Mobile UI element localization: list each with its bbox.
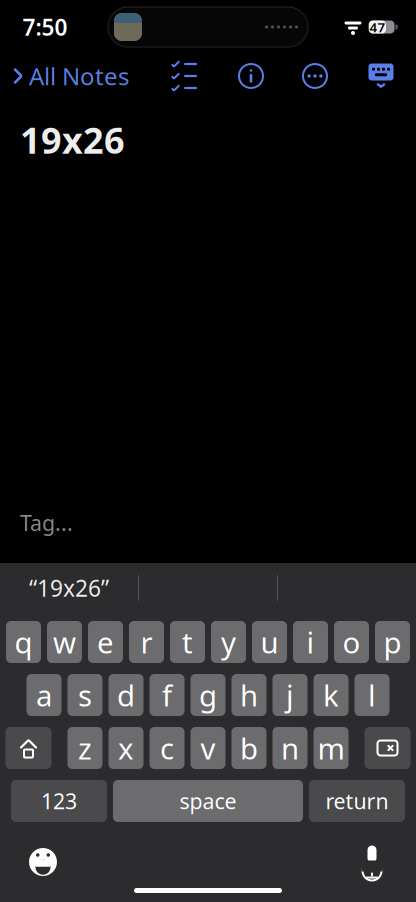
button[interactable]: k [313, 674, 348, 716]
staticText: y [221, 622, 236, 661]
button[interactable]: Info [232, 55, 270, 97]
staticText: 7:50 [22, 12, 67, 42]
button[interactable]: Tag... [0, 509, 416, 563]
button[interactable]: All Notes [0, 52, 129, 100]
staticText: p [383, 622, 401, 661]
button[interactable]: l [354, 674, 389, 716]
button[interactable]: Delete [364, 727, 410, 769]
staticText: k [323, 675, 339, 714]
button[interactable]: e [88, 621, 123, 663]
staticText: b [240, 728, 258, 767]
button[interactable]: d [108, 674, 143, 716]
staticText: e [97, 622, 114, 661]
button[interactable]: Emoji [16, 835, 70, 889]
staticText: 47 [369, 18, 385, 36]
button[interactable]: 123 [11, 780, 107, 822]
button[interactable]: return [309, 780, 405, 822]
button[interactable]: w [47, 621, 82, 663]
button[interactable]: n [272, 727, 307, 769]
staticText: j [286, 675, 294, 714]
staticText: r [140, 622, 152, 661]
staticText: l [368, 675, 376, 714]
button[interactable]: j [272, 674, 307, 716]
button[interactable]: q [6, 621, 41, 663]
button[interactable]: Shift [5, 727, 51, 769]
button[interactable]: a [26, 674, 61, 716]
staticText: 123 [41, 787, 77, 815]
staticText: s [78, 675, 92, 714]
staticText: space [179, 787, 236, 815]
button[interactable]: g [190, 674, 225, 716]
staticText: m [317, 728, 344, 767]
button[interactable]: z [67, 727, 102, 769]
staticText: v [200, 728, 215, 767]
staticText: w [53, 622, 76, 661]
button[interactable]: h [231, 674, 266, 716]
button[interactable]: r [129, 621, 164, 663]
button[interactable]: Dictation [348, 833, 396, 891]
staticText: x [118, 728, 134, 767]
staticText: All Notes [29, 60, 129, 92]
staticText: q [14, 622, 32, 661]
staticText: return [325, 787, 388, 815]
button[interactable]: Checklist [162, 58, 206, 94]
button[interactable]: More [296, 55, 334, 97]
staticText: d [117, 675, 135, 714]
staticText: g [199, 675, 217, 714]
button[interactable]: s [67, 674, 102, 716]
staticText: “19x26” [29, 573, 109, 603]
staticText: f [162, 675, 172, 714]
button[interactable]: c [149, 727, 184, 769]
button[interactable]: y [211, 621, 246, 663]
button[interactable]: m [313, 727, 348, 769]
staticText: Tag... [20, 509, 73, 537]
staticText: n [281, 728, 299, 767]
button[interactable]: t [170, 621, 205, 663]
button[interactable]: o [334, 621, 369, 663]
button[interactable]: x [108, 727, 143, 769]
staticText: 19x26 [20, 116, 125, 164]
staticText: o [342, 622, 360, 661]
button[interactable]: u [252, 621, 287, 663]
button[interactable]: i [293, 621, 328, 663]
staticText: t [182, 622, 193, 661]
staticText: z [78, 728, 92, 767]
button[interactable]: f [149, 674, 184, 716]
button[interactable]: “19x26” [0, 565, 138, 611]
staticText: a [36, 675, 52, 714]
staticText: h [240, 675, 258, 714]
button[interactable]: Hide Keyboard [360, 55, 402, 97]
button[interactable]: space [113, 780, 303, 822]
button[interactable]: v [190, 727, 225, 769]
button[interactable]: p [375, 621, 410, 663]
staticText: c [160, 728, 174, 767]
staticText: u [260, 622, 278, 661]
staticText: i [306, 622, 314, 661]
button[interactable]: b [231, 727, 266, 769]
